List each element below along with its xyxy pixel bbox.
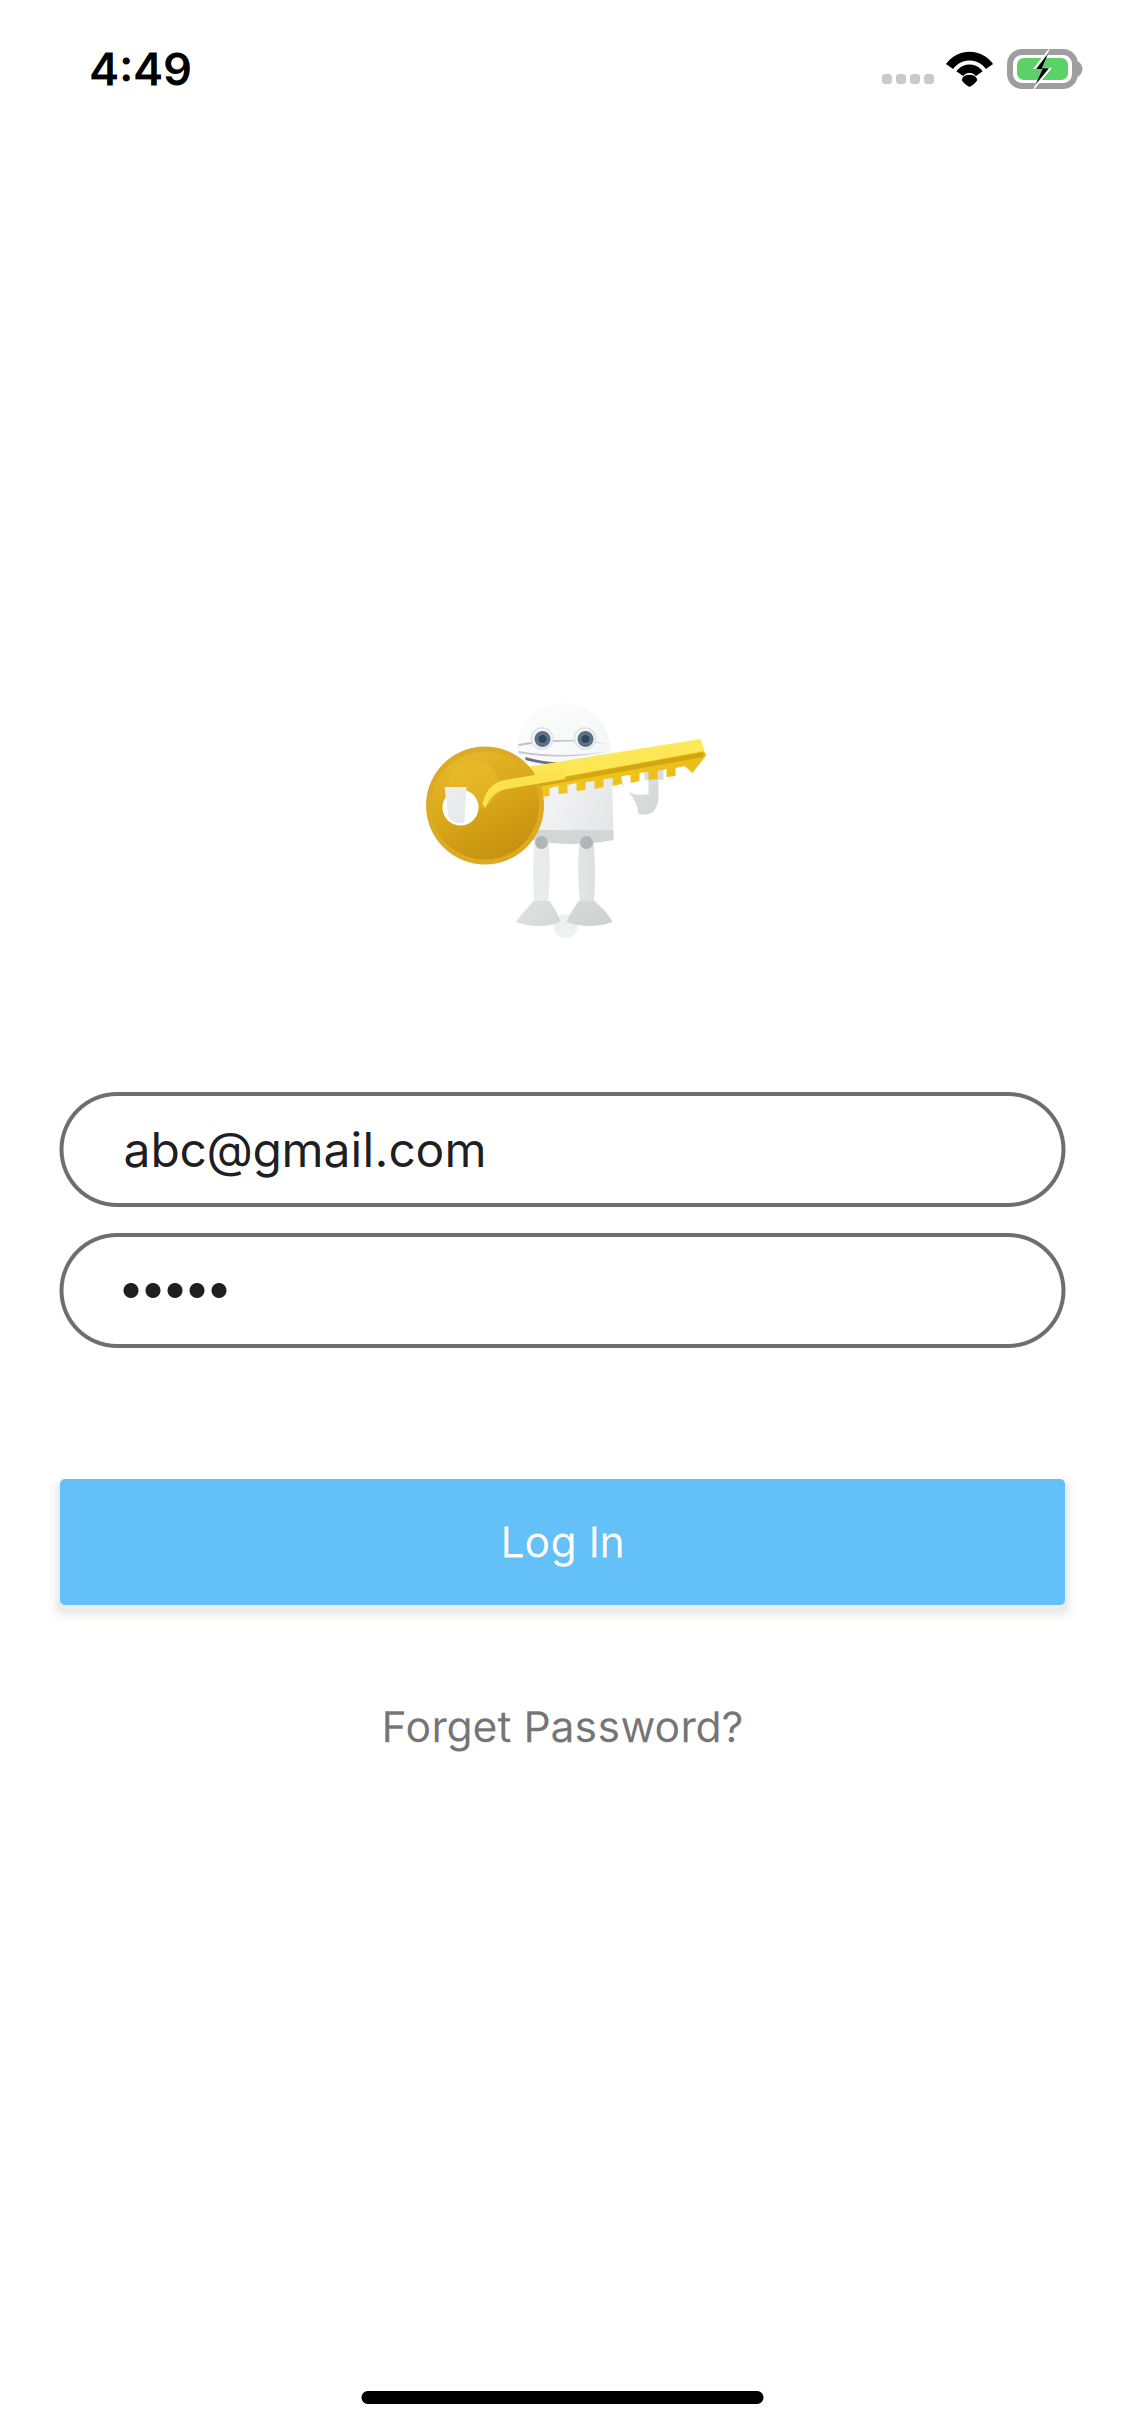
button[interactable]: Forget Password? [369, 1689, 755, 1765]
button[interactable]: Log In [60, 1479, 1065, 1605]
staticText: 4:49 [89, 42, 192, 96]
button[interactable] [61, 1235, 1063, 1346]
staticText: Log In [500, 1516, 624, 1568]
button[interactable]: abc@gmail.com [61, 1094, 1063, 1205]
staticText: Forget Password? [381, 1701, 743, 1753]
staticText: abc@gmail.com [123, 1120, 486, 1179]
